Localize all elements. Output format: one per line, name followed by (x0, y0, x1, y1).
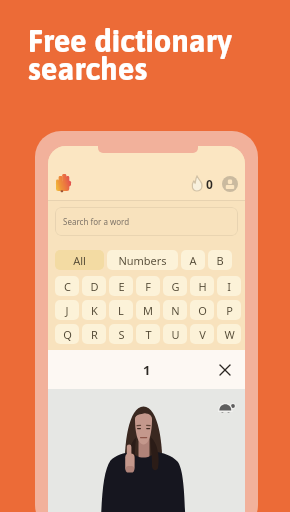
button[interactable]: Numbers (107, 250, 178, 270)
button[interactable]: Q (55, 324, 79, 344)
staticText: U (171, 327, 180, 342)
staticText: Numbers (118, 253, 167, 268)
button[interactable]: S (109, 324, 133, 344)
button[interactable]: Search for a word (55, 207, 238, 236)
staticText: 0 (206, 176, 213, 192)
button[interactable]: G (163, 276, 187, 296)
staticText: S (118, 327, 125, 342)
button[interactable]: N (163, 300, 187, 320)
button[interactable]: V (190, 324, 214, 344)
staticText: C (64, 279, 71, 294)
staticText: Q (63, 327, 72, 342)
button[interactable]: K (82, 300, 106, 320)
staticText: O (198, 303, 207, 318)
button[interactable]: All (55, 250, 104, 270)
button[interactable]: M (136, 300, 160, 320)
button[interactable]: W (217, 324, 241, 344)
button[interactable]: U (163, 324, 187, 344)
button[interactable]: H (190, 276, 214, 296)
button[interactable]: B (208, 250, 232, 270)
button[interactable]: L (109, 300, 133, 320)
button[interactable]: Close (215, 360, 235, 380)
button[interactable]: A (181, 250, 205, 270)
staticText: Free dictionary searches (28, 23, 232, 86)
button[interactable]: E (109, 276, 133, 296)
button[interactable]: Account (216, 170, 242, 196)
button[interactable]: O (190, 300, 214, 320)
staticText: H (198, 279, 207, 294)
staticText: J (65, 303, 69, 318)
staticText: M (143, 303, 153, 318)
button[interactable]: 0 (187, 172, 217, 194)
button[interactable]: F (136, 276, 160, 296)
staticText: D (90, 279, 99, 294)
staticText: W (224, 327, 235, 342)
button[interactable]: T (136, 324, 160, 344)
button[interactable]: C (55, 276, 79, 296)
button[interactable]: I (217, 276, 241, 296)
button[interactable]: R (82, 324, 106, 344)
staticText: T (145, 327, 152, 342)
staticText: 1 (143, 361, 151, 379)
staticText: R (91, 327, 98, 342)
staticText: F (145, 279, 151, 294)
button[interactable]: Home (50, 168, 76, 194)
staticText: I (227, 279, 231, 294)
staticText: K (91, 303, 98, 318)
staticText: P (226, 303, 233, 318)
staticText: E (118, 279, 125, 294)
staticText: All (73, 253, 86, 268)
staticText: V (199, 327, 206, 342)
button[interactable]: Slow motion (214, 397, 238, 417)
staticText: B (216, 253, 224, 268)
staticText: G (171, 279, 180, 294)
staticText: A (189, 253, 197, 268)
button[interactable]: D (82, 276, 106, 296)
staticText: Search for a word (63, 216, 130, 227)
staticText: L (118, 303, 124, 318)
button[interactable]: J (55, 300, 79, 320)
button[interactable]: P (217, 300, 241, 320)
staticText: N (171, 303, 180, 318)
